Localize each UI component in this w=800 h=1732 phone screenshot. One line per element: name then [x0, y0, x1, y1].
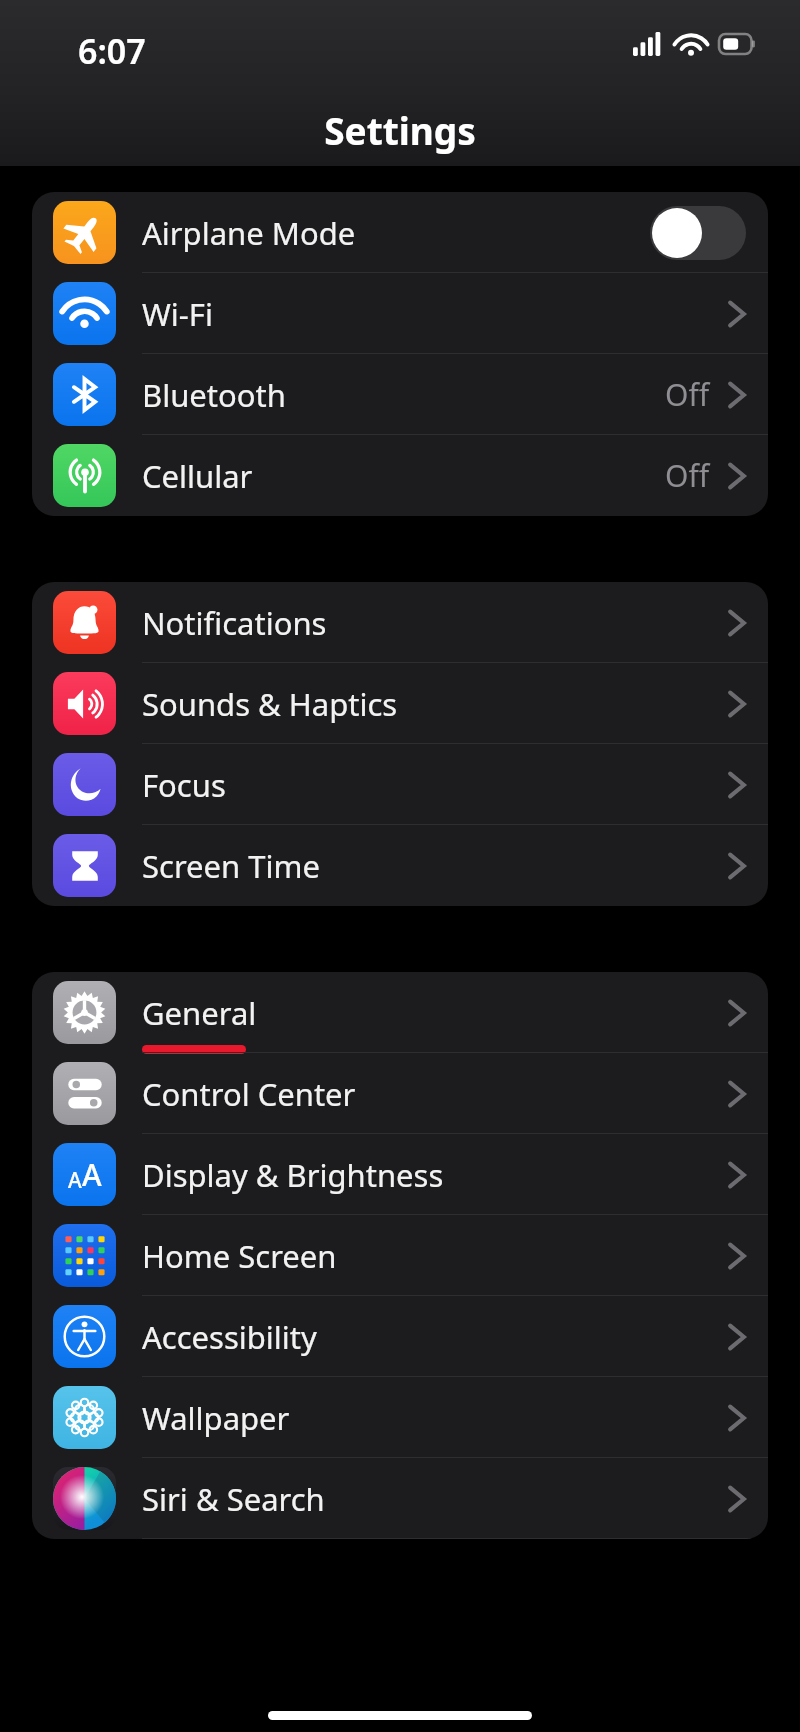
staticText: Settings — [324, 105, 476, 155]
other: Open — [728, 1484, 746, 1514]
other: Open — [728, 380, 746, 410]
button[interactable]: Cellular — [32, 435, 768, 516]
other: Open — [728, 608, 746, 638]
staticText: Screen Time — [142, 845, 320, 887]
staticText: Home Screen — [142, 1235, 337, 1277]
other: Open — [728, 1322, 746, 1352]
button[interactable]: A — [32, 1134, 768, 1215]
staticText: Off — [665, 374, 710, 415]
button[interactable]: Wi-Fi — [32, 273, 768, 354]
button[interactable]: Notifications — [32, 582, 768, 663]
button[interactable]: Airplane Mode — [32, 192, 768, 273]
other: Open — [728, 1079, 746, 1109]
other: Open — [728, 1241, 746, 1271]
staticText: Airplane Mode — [142, 212, 356, 254]
button[interactable]: Focus — [32, 744, 768, 825]
staticText: General — [142, 992, 257, 1034]
button[interactable]: Home Screen — [32, 1215, 768, 1296]
button[interactable]: Control Center — [32, 1053, 768, 1134]
staticText: Wallpaper — [142, 1397, 290, 1439]
staticText: Notifications — [142, 602, 327, 644]
staticText: Sounds & Haptics — [142, 683, 398, 725]
staticText: Focus — [142, 764, 226, 806]
staticText: 6:07 — [78, 28, 146, 74]
staticText: Control Center — [142, 1073, 356, 1115]
button[interactable]: Sounds & Haptics — [32, 663, 768, 744]
staticText: Bluetooth — [142, 374, 286, 416]
other: Open — [728, 770, 746, 800]
button[interactable]: Screen Time — [32, 825, 768, 906]
staticText: A — [82, 1154, 102, 1195]
button[interactable]: Siri & Search — [32, 1458, 768, 1539]
other: Open — [728, 851, 746, 881]
staticText: Wi-Fi — [142, 293, 213, 335]
button[interactable]: Accessibility — [32, 1296, 768, 1377]
staticText: Siri & Search — [142, 1478, 325, 1520]
button[interactable]: Wallpaper — [32, 1377, 768, 1458]
button[interactable]: General — [32, 972, 768, 1053]
staticText: Off — [665, 455, 710, 496]
other: Open — [728, 1160, 746, 1190]
other: Open — [728, 461, 746, 491]
staticText: Display & Brightness — [142, 1154, 444, 1196]
other: Open — [728, 1403, 746, 1433]
other: Open — [728, 689, 746, 719]
button[interactable]: Bluetooth — [32, 354, 768, 435]
staticText: A — [68, 1166, 82, 1195]
staticText: Cellular — [142, 455, 253, 497]
button[interactable]: Airplane Mode toggle — [650, 206, 746, 260]
other: Open — [728, 998, 746, 1028]
staticText: Accessibility — [142, 1316, 317, 1358]
other: Open — [728, 299, 746, 329]
